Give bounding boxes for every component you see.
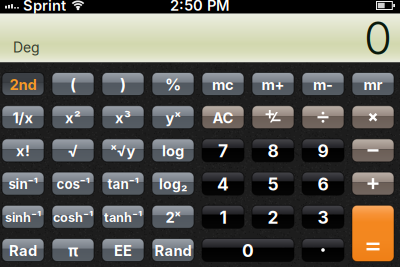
button[interactable]: m+ xyxy=(252,72,294,95)
button[interactable]: Equals xyxy=(352,205,394,261)
staticText: 1 xyxy=(219,207,226,228)
button[interactable]: yˣ xyxy=(152,106,194,129)
button[interactable]: m- xyxy=(302,72,344,95)
button[interactable]: ) xyxy=(102,72,144,95)
staticText: tan⁻¹ xyxy=(107,176,138,192)
button[interactable]: sinh⁻¹ xyxy=(2,205,44,228)
button[interactable]: Rad xyxy=(2,238,44,261)
button[interactable]: 8 xyxy=(252,139,294,162)
staticText: ) xyxy=(120,75,126,94)
button[interactable]: ˣ√y xyxy=(102,139,144,162)
staticText: 4 xyxy=(217,174,229,195)
button[interactable]: Divide xyxy=(302,106,344,129)
staticText: yˣ xyxy=(165,109,180,127)
button[interactable]: ( xyxy=(52,72,94,95)
staticText: 2 xyxy=(267,207,278,228)
staticText: log xyxy=(162,142,184,160)
button[interactable]: 2ˣ xyxy=(152,205,194,228)
button[interactable]: 3 xyxy=(302,205,344,228)
button[interactable]: % xyxy=(152,72,194,95)
staticText: 0 xyxy=(242,240,254,261)
button[interactable]: 5 xyxy=(252,172,294,195)
staticText: 2ˣ xyxy=(165,208,180,226)
button[interactable]: log₂ xyxy=(152,172,194,195)
staticText: cos⁻¹ xyxy=(56,176,89,192)
button[interactable]: 4 xyxy=(202,172,244,195)
staticText: π xyxy=(68,241,78,260)
staticText: 2nd xyxy=(9,76,36,93)
staticText: AC xyxy=(212,109,233,127)
button[interactable]: x² xyxy=(52,106,94,129)
button[interactable]: mc xyxy=(202,72,244,95)
staticText: mc xyxy=(212,76,234,93)
staticText: Rad xyxy=(9,242,37,259)
staticText: ˣ√y xyxy=(110,142,135,160)
staticText: Sprint xyxy=(23,0,66,14)
button[interactable]: x! xyxy=(2,139,44,162)
button[interactable]: Plus xyxy=(352,172,394,195)
staticText: Deg xyxy=(13,39,40,56)
button[interactable]: Multiply xyxy=(352,106,394,129)
staticText: 3 xyxy=(317,207,328,228)
button[interactable]: 2nd xyxy=(2,72,44,95)
button[interactable]: 7 xyxy=(202,139,244,162)
staticText: cosh⁻¹ xyxy=(53,210,93,225)
button[interactable]: π xyxy=(52,238,94,261)
button[interactable]: log xyxy=(152,139,194,162)
staticText: 7 xyxy=(218,140,228,161)
staticText: tanh⁻¹ xyxy=(104,210,142,225)
button[interactable]: AC xyxy=(202,106,244,129)
staticText: x² xyxy=(65,109,81,127)
button[interactable]: cosh⁻¹ xyxy=(52,205,94,228)
button[interactable]: 0 xyxy=(202,238,294,261)
staticText: sinh⁻¹ xyxy=(5,210,41,225)
button[interactable]: 9 xyxy=(302,139,344,162)
button[interactable]: tan⁻¹ xyxy=(102,172,144,195)
staticText: % xyxy=(165,75,181,94)
staticText: m+ xyxy=(261,76,284,93)
staticText: x³ xyxy=(115,109,131,127)
staticText: 0 xyxy=(364,11,392,65)
staticText: Rand xyxy=(154,242,191,259)
staticText: 6 xyxy=(317,174,328,195)
button[interactable]: Decimal point xyxy=(302,238,344,261)
staticText: x! xyxy=(16,142,30,160)
button[interactable]: sin⁻¹ xyxy=(2,172,44,195)
button[interactable]: 1 xyxy=(202,205,244,228)
button[interactable]: Minus xyxy=(352,139,394,162)
button[interactable]: 2 xyxy=(252,205,294,228)
staticText: ( xyxy=(70,75,76,94)
button[interactable]: cos⁻¹ xyxy=(52,172,94,195)
button[interactable]: x³ xyxy=(102,106,144,129)
button[interactable]: 6 xyxy=(302,172,344,195)
staticText: EE xyxy=(114,242,132,259)
staticText: 2:50 PM xyxy=(170,0,230,14)
staticText: sin⁻¹ xyxy=(8,176,37,192)
staticText: 8 xyxy=(267,140,278,161)
staticText: 1/x xyxy=(12,109,33,127)
button[interactable]: mr xyxy=(352,72,394,95)
button[interactable]: 1/x xyxy=(2,106,44,129)
button[interactable]: Plus minus xyxy=(252,106,294,129)
staticText: log₂ xyxy=(159,176,187,193)
button[interactable]: EE xyxy=(102,238,144,261)
button[interactable]: √ xyxy=(52,139,94,162)
staticText: 5 xyxy=(267,174,278,195)
staticText: m- xyxy=(313,76,333,93)
staticText: 9 xyxy=(317,140,328,161)
staticText: mr xyxy=(363,76,382,93)
staticText: √ xyxy=(67,141,78,161)
button[interactable]: tanh⁻¹ xyxy=(102,205,144,228)
button[interactable]: Rand xyxy=(152,238,194,261)
